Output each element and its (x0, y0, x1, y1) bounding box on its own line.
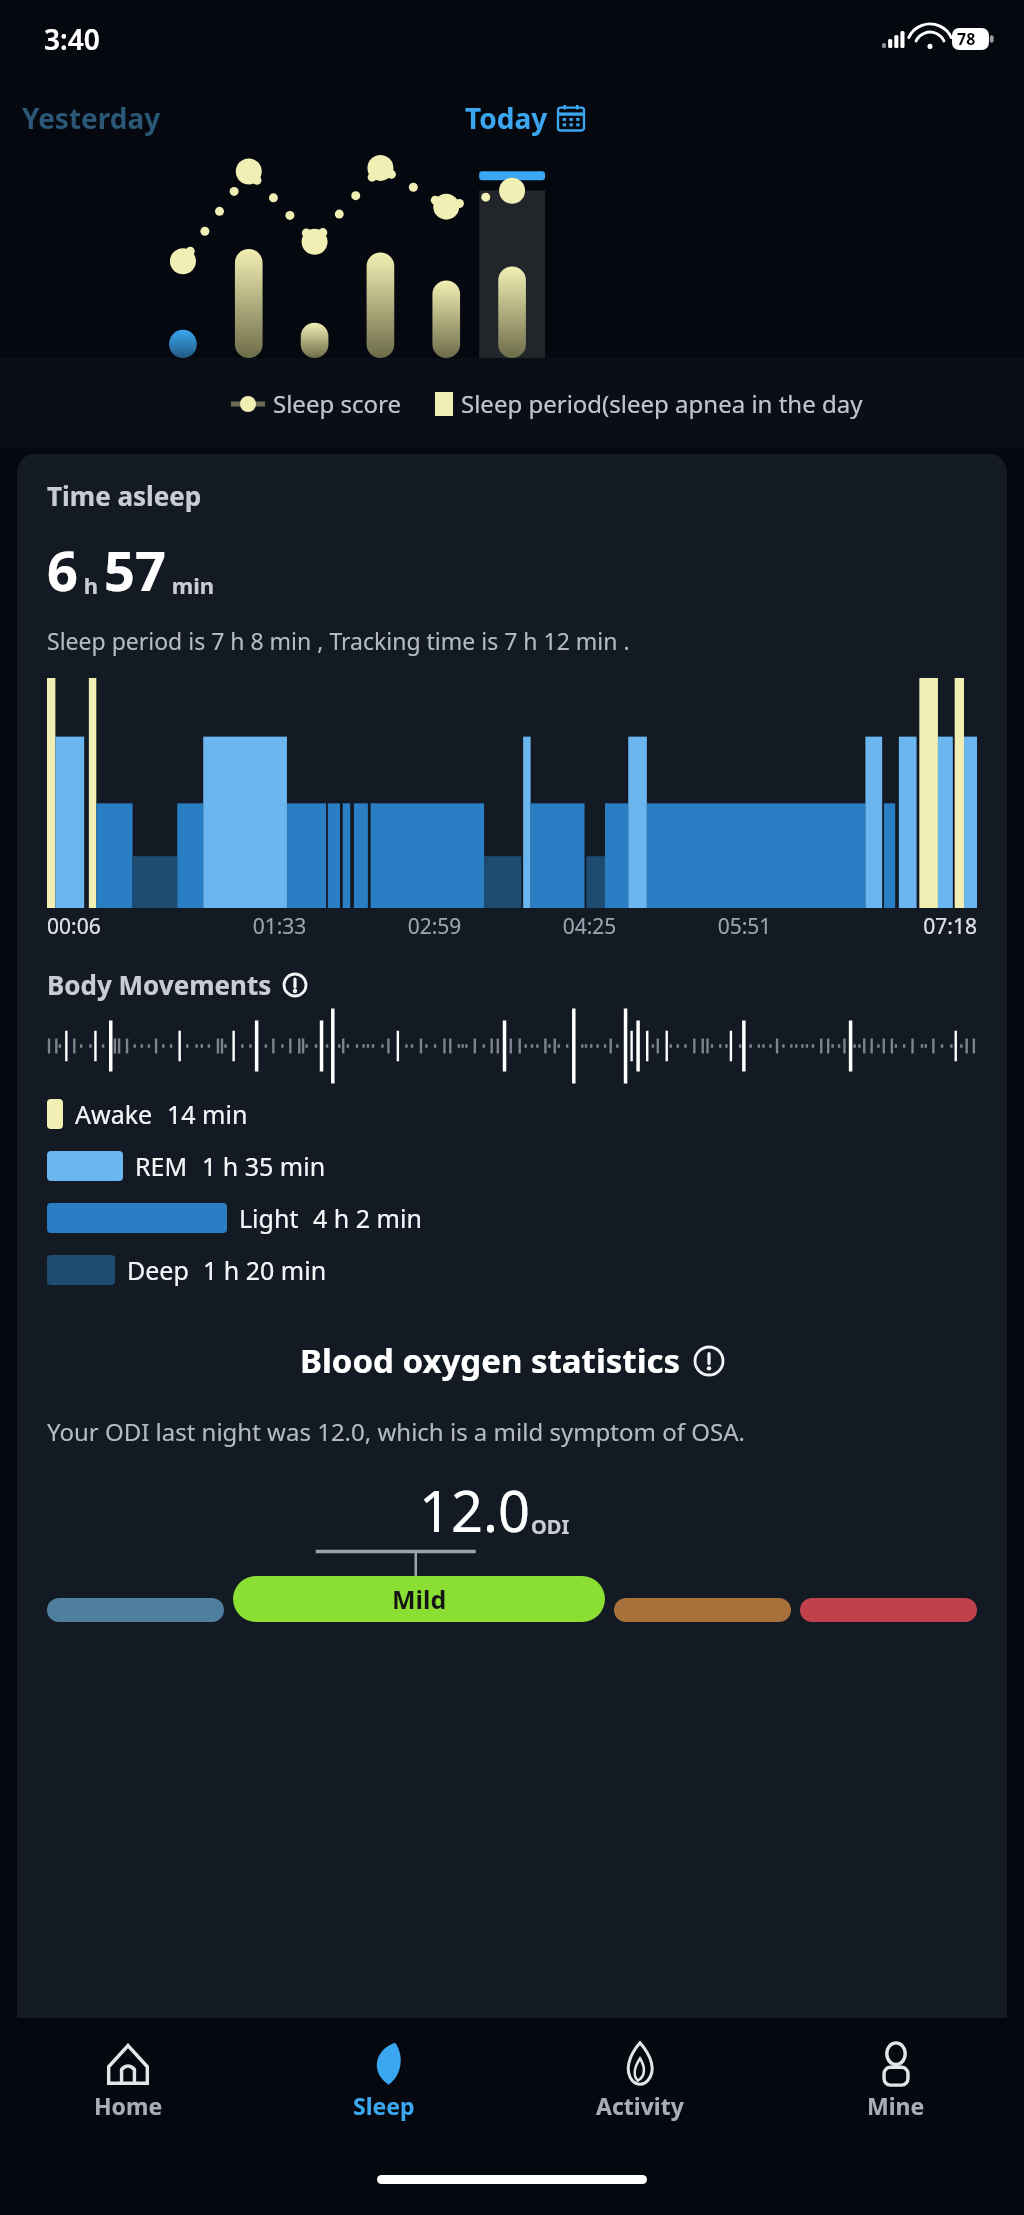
staticText: Your ODI last night was 12.0, which is a… (47, 1415, 745, 1448)
button[interactable]: Awake (47, 1088, 977, 1140)
staticText: 02:59 (357, 912, 512, 941)
staticText: 07:18 (822, 912, 977, 941)
button[interactable]: Activity (512, 2018, 768, 2143)
staticText: 4 h 2 min (313, 1201, 422, 1235)
staticText: REM (135, 1149, 188, 1183)
staticText: Sleep (353, 2090, 415, 2121)
staticText: Time asleep (47, 478, 202, 513)
button[interactable]: Mild (233, 1576, 605, 1622)
staticText: 01:33 (202, 912, 357, 941)
staticText: ODI (531, 1513, 570, 1540)
button[interactable] (614, 1598, 791, 1622)
button[interactable]: REM (47, 1140, 977, 1192)
staticText: Blood oxygen statistics (300, 1338, 681, 1383)
staticText: 12.0 (419, 1472, 531, 1548)
button[interactable]: Yesterday (16, 91, 167, 145)
button[interactable]: Blood oxygen statistics (47, 1338, 977, 1383)
other: Info (282, 972, 308, 998)
staticText: Body Movements (47, 967, 272, 1002)
button[interactable]: Today (459, 91, 590, 145)
staticText: 00:06 (47, 912, 202, 941)
button[interactable] (800, 1598, 977, 1622)
staticText: 1 h 20 min (203, 1253, 327, 1287)
staticText: Awake (75, 1097, 153, 1131)
button[interactable]: Sleep (256, 2018, 512, 2143)
button[interactable]: Mine (768, 2018, 1024, 2143)
staticText: Light (239, 1201, 299, 1235)
staticText: 3:40 (44, 20, 100, 58)
staticText: Mine (867, 2090, 925, 2121)
staticText: 6 (47, 533, 78, 607)
staticText: min (166, 570, 215, 600)
staticText: Today (465, 99, 548, 137)
staticText: Activity (596, 2090, 684, 2121)
staticText: Home (94, 2090, 163, 2121)
button[interactable]: Home (0, 2018, 256, 2143)
staticText: h (78, 570, 104, 600)
staticText: 14 min (167, 1097, 248, 1131)
staticText: Sleep period(sleep apnea in the day (461, 387, 863, 420)
button[interactable] (47, 1598, 224, 1622)
other: Info (693, 1345, 725, 1377)
staticText: Mild (392, 1582, 447, 1616)
staticText: 04:25 (512, 912, 667, 941)
button[interactable]: Light (47, 1192, 977, 1244)
staticText: 1 h 35 min (202, 1149, 326, 1183)
staticText: 05:51 (667, 912, 822, 941)
staticText: 78 (957, 28, 976, 50)
staticText: Deep (127, 1253, 189, 1287)
button[interactable]: Body Movements (47, 967, 308, 1002)
button[interactable]: Deep (47, 1244, 977, 1296)
staticText: Sleep period is 7 h 8 min , Tracking tim… (47, 625, 630, 656)
staticText: Yesterday (22, 99, 161, 137)
staticText: 57 (104, 533, 166, 607)
staticText: Sleep score (273, 387, 401, 420)
